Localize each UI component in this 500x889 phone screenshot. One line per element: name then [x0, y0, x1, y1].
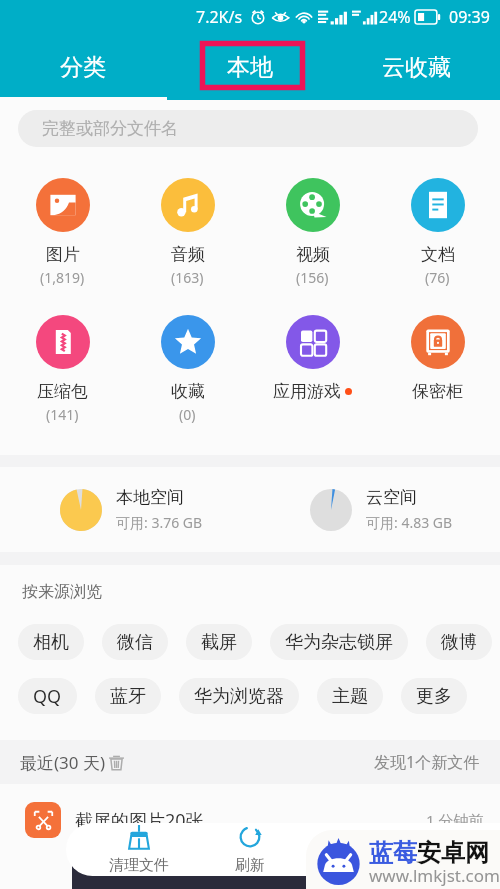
staticText: 主题 [332, 685, 368, 708]
staticText: 可用: 4.83 GB [366, 513, 453, 532]
staticText: (163) [171, 268, 204, 287]
staticText: 图片 [46, 244, 80, 265]
staticText: (0) [179, 405, 196, 424]
staticText: 视频 [296, 244, 330, 265]
staticText: 文档 [421, 244, 455, 265]
button[interactable]: 云空间 [310, 487, 500, 532]
staticText: 音频 [171, 244, 205, 265]
button[interactable]: 主题 [317, 678, 383, 714]
button[interactable]: 压缩包 [0, 315, 125, 424]
button[interactable]: 分类 [0, 34, 166, 100]
staticText: 发现1个新文件 [374, 751, 480, 773]
staticText: 按来源浏览 [22, 582, 102, 602]
staticText: www.lmkjst.com [369, 864, 500, 887]
staticText: (1,819) [40, 268, 85, 287]
staticText: 微博 [441, 631, 477, 654]
button[interactable]: 音频 [125, 178, 250, 287]
staticText: 清理文件 [109, 856, 169, 875]
staticText: 收藏 [171, 381, 205, 402]
button[interactable]: 华为杂志锁屏 [270, 624, 408, 660]
staticText: 华为浏览器 [194, 685, 284, 708]
button[interactable]: 相机 [18, 624, 84, 660]
button[interactable]: 云收藏 [333, 34, 500, 100]
staticText: (76) [425, 268, 450, 287]
button[interactable]: 刷新 [210, 824, 290, 875]
staticText: 24% [379, 6, 411, 28]
staticText: 保密柜 [412, 381, 463, 402]
staticText: 分类 [60, 53, 106, 82]
staticText: 截屏 [201, 631, 237, 654]
staticText: 可用: 3.76 GB [116, 513, 203, 532]
button[interactable]: 收藏 [125, 315, 250, 424]
staticText: 蓝莓 [369, 838, 417, 868]
staticText: (156) [296, 268, 329, 287]
button[interactable]: 微博 [426, 624, 492, 660]
button[interactable]: 视频 [250, 178, 375, 287]
staticText: 更多 [416, 685, 452, 708]
staticText: 压缩包 [37, 381, 88, 402]
button[interactable]: 本地 [166, 34, 333, 100]
button[interactable]: 更多 [401, 678, 467, 714]
staticText: 完整或部分文件名 [42, 118, 178, 139]
staticText: 截屏的图片20张 [75, 808, 204, 833]
staticText: (141) [46, 405, 79, 424]
button[interactable]: 蓝牙 [95, 678, 161, 714]
button[interactable]: 微信 [102, 624, 168, 660]
staticText: 蓝牙 [110, 685, 146, 708]
staticText: 微信 [117, 631, 153, 654]
staticText: 09:39 [449, 6, 490, 28]
staticText: 最近(30 天) [20, 751, 106, 774]
button[interactable]: 截屏 [186, 624, 252, 660]
button[interactable]: QQ [18, 678, 77, 714]
button[interactable]: 完整或部分文件名 [18, 110, 478, 147]
staticText: 安卓网 [417, 838, 489, 868]
button[interactable]: 本地空间 [60, 487, 250, 532]
button[interactable]: 文档 [375, 178, 500, 287]
staticText: 华为杂志锁屏 [285, 631, 393, 654]
staticText: QQ [33, 684, 62, 709]
button[interactable]: 图片 [0, 178, 125, 287]
staticText: 7.2K/s [196, 6, 243, 28]
staticText: 刷新 [235, 856, 265, 875]
staticText: 本地 [227, 53, 273, 82]
staticText: 1 分钟前 [426, 810, 484, 830]
button[interactable]: 清理文件 [99, 824, 179, 875]
staticText: 本地空间 [116, 487, 184, 508]
staticText: 相机 [33, 631, 69, 654]
other: Clear recent [108, 754, 125, 771]
staticText: 云空间 [366, 487, 417, 508]
button[interactable]: 华为浏览器 [179, 678, 299, 714]
staticText: 云收藏 [382, 53, 451, 82]
button[interactable]: 应用游戏 [250, 315, 375, 402]
button[interactable]: 保密柜 [375, 315, 500, 402]
staticText: 应用游戏 [273, 381, 341, 402]
